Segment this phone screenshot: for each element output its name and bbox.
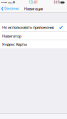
button[interactable]: Не использовать приложения xyxy=(0,23,67,31)
staticText: Основные xyxy=(4,7,18,10)
staticText: 84% xyxy=(54,1,60,4)
button[interactable]: Навигатор xyxy=(0,32,67,40)
button[interactable]: Основные xyxy=(0,5,19,12)
staticText: MTS xyxy=(8,1,12,4)
staticText: 13:41 xyxy=(29,1,38,4)
staticText: Не использовать приложения xyxy=(2,25,54,30)
staticText: Навигатор xyxy=(2,33,21,38)
button[interactable]: Яндекс Карты xyxy=(0,40,67,48)
staticText: Яндекс Карты xyxy=(2,41,27,47)
staticText: Навигация xyxy=(24,6,43,11)
